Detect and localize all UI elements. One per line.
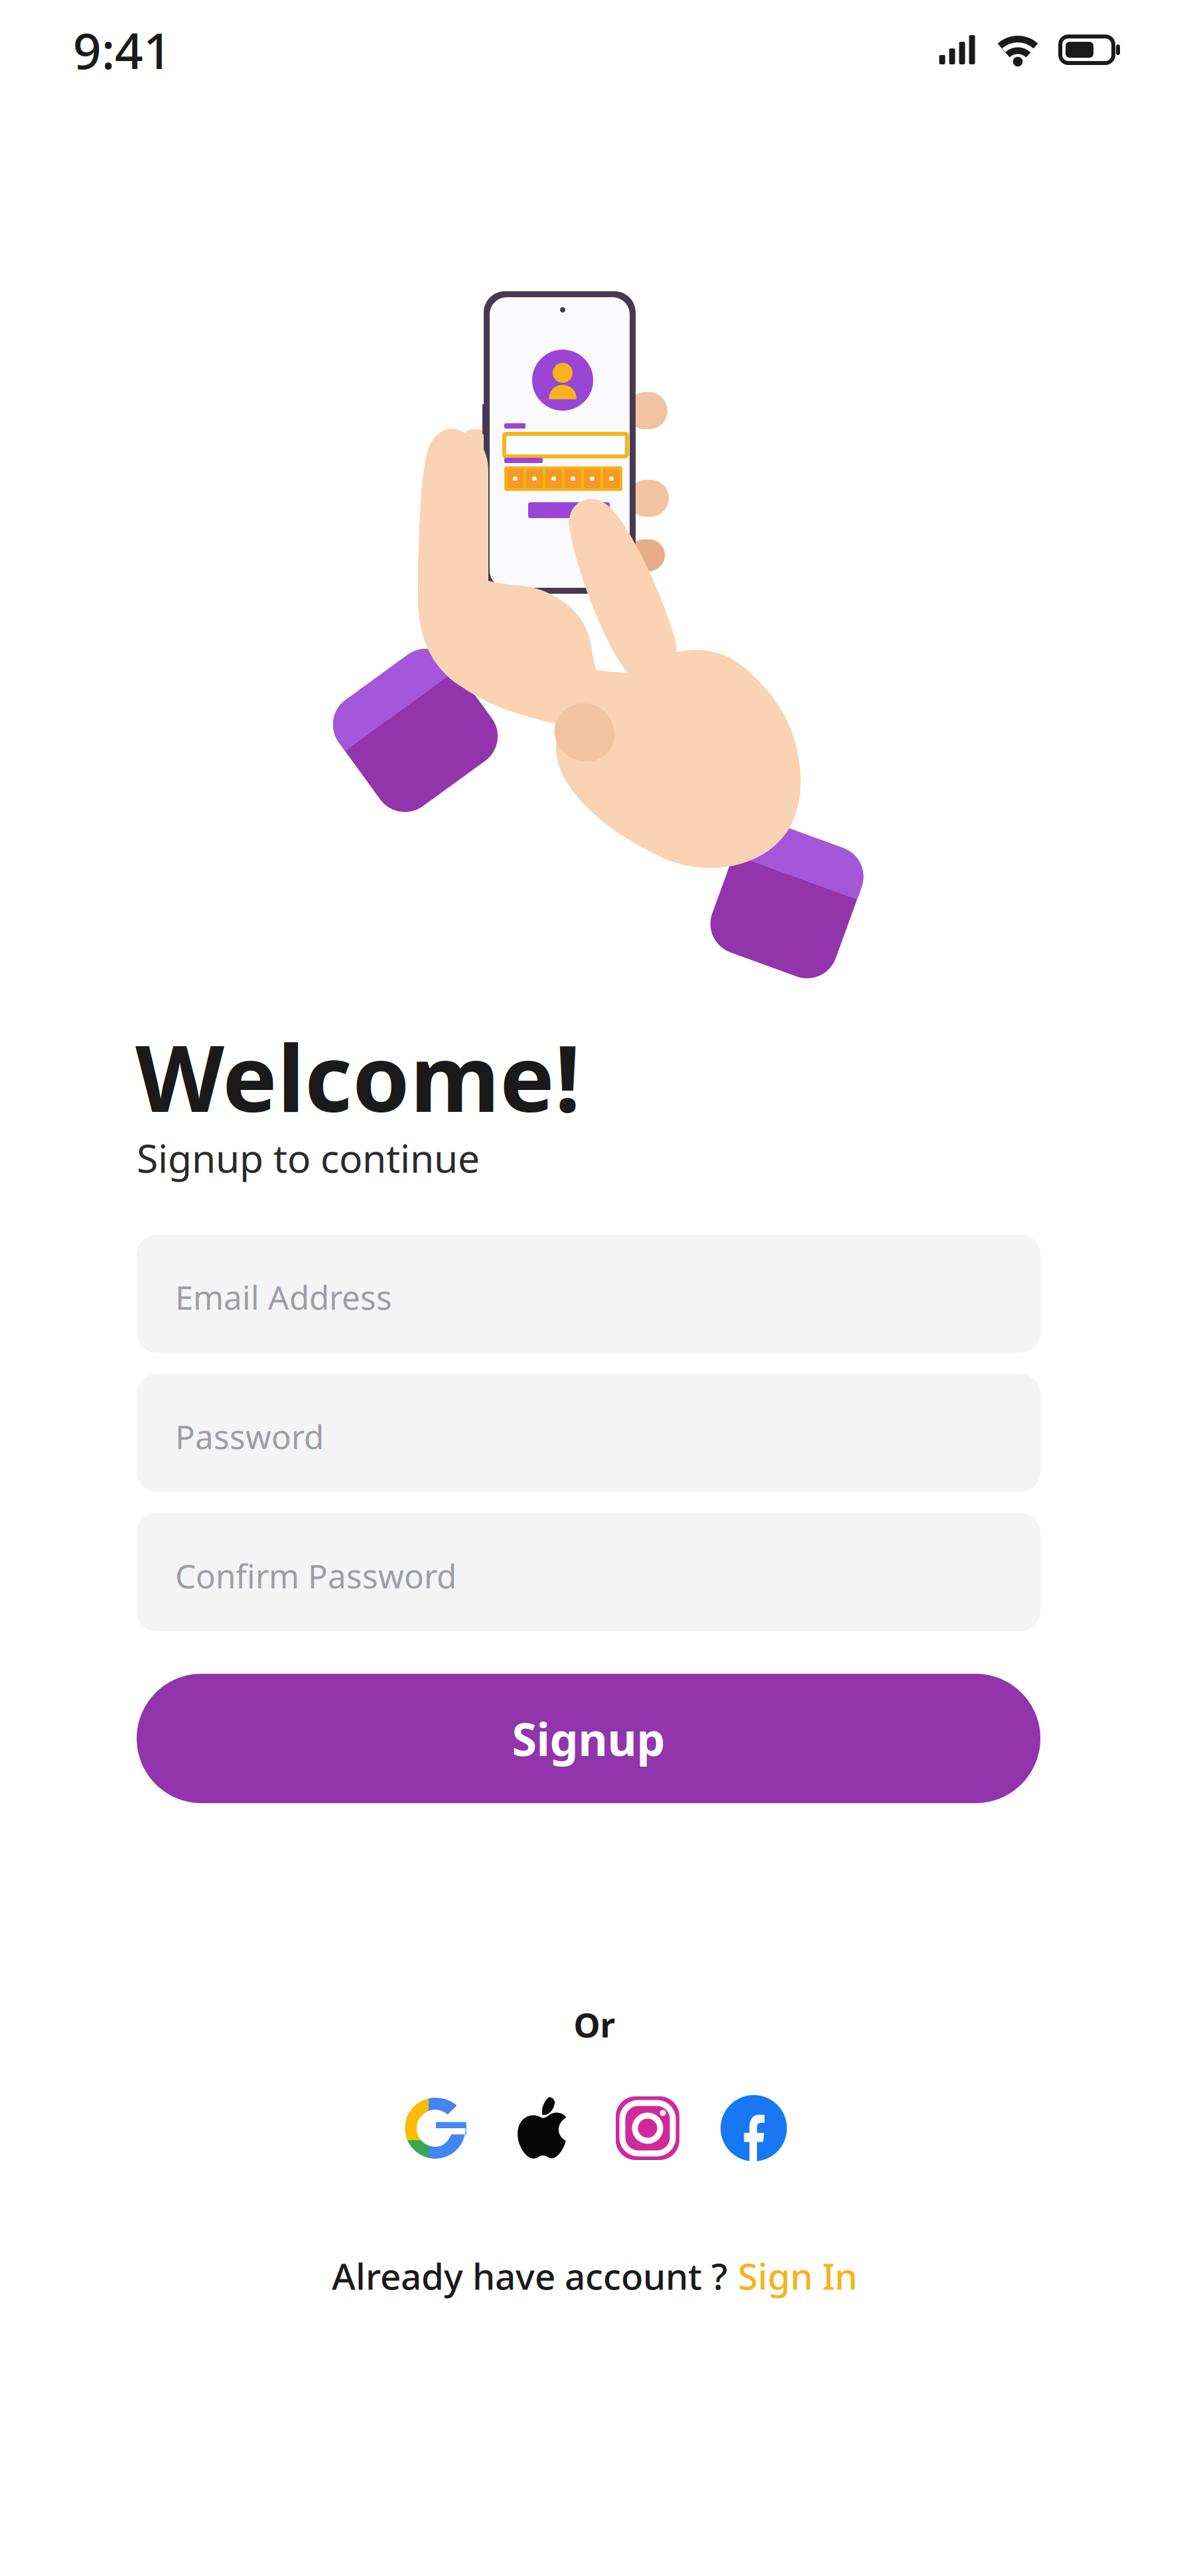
staticText: Signup to continue [137, 1132, 480, 1183]
staticText: Confirm Password [175, 1554, 456, 1597]
button[interactable]: Sign In [738, 2252, 857, 2300]
button[interactable]: Confirm Password [137, 1513, 1040, 1631]
button[interactable]: Sign up with Facebook [719, 2094, 788, 2163]
staticText: Email Address [175, 1275, 392, 1319]
staticText: Already have account ? [332, 2252, 727, 2300]
staticText: Or [574, 2002, 615, 2047]
button[interactable]: Signup [137, 1674, 1040, 1803]
button[interactable]: Sign up with Instagram [613, 2094, 682, 2163]
staticText: Signup [512, 1708, 665, 1768]
button[interactable]: Sign up with Google [401, 2094, 470, 2163]
staticText: Password [175, 1415, 324, 1458]
button[interactable]: Sign up with Apple [507, 2094, 576, 2163]
staticText: Welcome! [135, 1015, 581, 1137]
staticText: 9:41 [73, 17, 172, 83]
button[interactable]: Password [137, 1374, 1040, 1492]
button[interactable]: Email Address [137, 1235, 1040, 1353]
staticText: Sign In [738, 2252, 857, 2300]
